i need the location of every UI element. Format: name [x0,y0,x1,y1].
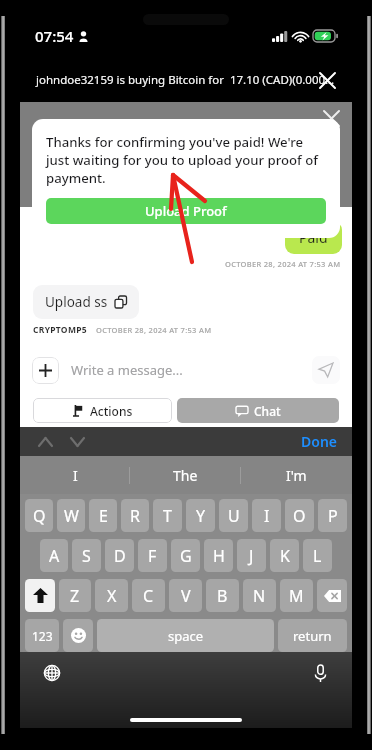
button[interactable]: Y [186,499,215,532]
button[interactable]: R [121,499,149,532]
button[interactable]: E [89,499,117,532]
staticText: Z [70,585,80,607]
button[interactable]: Paid [285,221,342,254]
staticText: Q [33,505,46,527]
staticText: The [173,466,198,485]
staticText: H [213,545,225,567]
staticText: I [73,466,78,485]
button[interactable]: U [219,499,248,532]
button[interactable]: Write a message... [71,361,312,379]
button[interactable]: V [169,579,202,612]
staticText: Chat [254,403,281,419]
staticText: Thanks for confirming you've paid! We're… [46,133,326,187]
staticText: U [228,505,240,527]
staticText: CRYPTOMP5 [33,324,87,336]
button[interactable]: Z [59,579,91,612]
staticText: O [293,505,306,527]
button[interactable]: Done [287,428,352,455]
staticText: return [293,627,332,645]
button[interactable]: return [278,619,347,652]
staticText: M [289,585,304,607]
staticText: Actions [90,403,133,419]
button[interactable]: S [72,539,101,572]
button[interactable]: M [280,579,313,612]
button[interactable]: Backspace [317,579,347,612]
button[interactable]: J [237,539,266,572]
button[interactable]: Chat [177,398,339,423]
button[interactable]: I'm [241,456,352,494]
button[interactable]: T [153,499,182,532]
button[interactable]: Actions [33,398,172,423]
button[interactable]: A [40,539,68,572]
button[interactable]: Add attachment [32,357,59,384]
button[interactable]: B [206,579,239,612]
staticText: W [64,505,79,527]
button[interactable]: 123 [25,619,59,652]
button[interactable]: L [303,539,332,572]
button[interactable]: I [20,456,130,494]
button[interactable]: G [171,539,200,572]
staticText: R [130,505,140,527]
staticText: C [143,585,154,607]
staticText: X [107,585,117,607]
staticText: P [328,505,338,527]
button[interactable]: X [95,579,128,612]
staticText: A [49,545,60,567]
button[interactable]: Upload ss [33,285,139,319]
button[interactable]: space [97,619,274,652]
button[interactable]: D [105,539,134,572]
staticText: OCTOBER 28, 2024 AT 7:53 AM [225,259,341,269]
staticText: Upload Proof [145,202,227,220]
button[interactable]: Q [25,499,53,532]
staticText: D [114,545,126,567]
button[interactable]: I [252,499,281,532]
button[interactable]: Dictate [305,658,335,688]
staticText: Y [196,505,206,527]
button[interactable]: Emoji [63,619,93,652]
button[interactable]: K [270,539,299,572]
staticText: space [168,627,204,645]
button[interactable]: Send [312,356,340,384]
staticText: G [180,545,192,567]
staticText: F [148,545,157,567]
button[interactable]: H [204,539,233,572]
staticText: T [163,505,172,527]
staticText: S [82,545,91,567]
staticText: E [99,505,108,527]
staticText: OCTOBER 28, 2024 AT 7:53 AM [96,325,212,335]
staticText: B [217,585,228,607]
button[interactable]: O [285,499,314,532]
button[interactable]: The [130,456,241,494]
staticText: L [313,545,322,567]
staticText: 07:54 [35,26,74,46]
staticText: I'm [286,466,307,485]
button[interactable]: Change keyboard language [37,658,67,688]
button[interactable]: Next field [64,429,90,455]
staticText: 123 [32,628,53,644]
staticText: J [249,545,254,567]
staticText: I [264,505,270,527]
staticText: V [181,585,191,607]
button[interactable]: Shift [25,579,55,612]
button[interactable]: P [318,499,347,532]
button[interactable]: Previous field [32,429,58,455]
staticText: N [253,585,266,607]
button[interactable]: Close [310,63,344,97]
button[interactable]: N [243,579,276,612]
button[interactable]: C [132,579,165,612]
staticText: Paid [299,228,328,247]
staticText: K [280,545,290,567]
button[interactable]: W [57,499,85,532]
staticText: johndoe32159 is buying Bitcoin for 17.10… [36,72,335,88]
button[interactable]: Upload Proof [46,198,326,224]
staticText: Upload ss [45,293,108,311]
staticText: Done [301,432,338,451]
button[interactable]: F [138,539,167,572]
staticText: Write a message... [71,361,183,379]
